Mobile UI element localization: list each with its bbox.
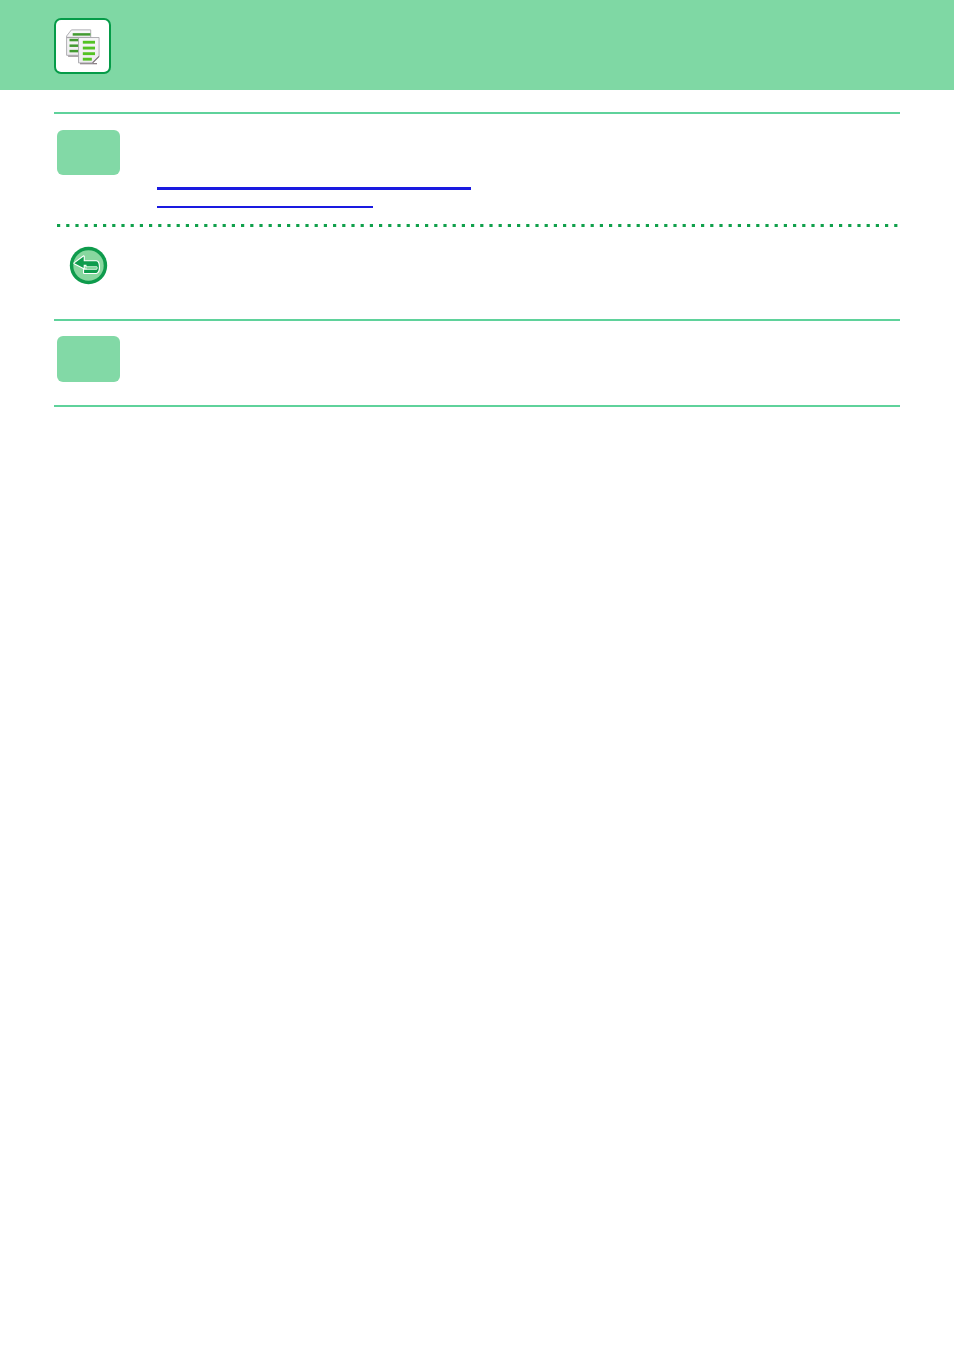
button[interactable] (57, 336, 120, 382)
button[interactable]: Copy (56, 20, 109, 72)
button[interactable]: Cancel (69, 246, 108, 285)
button[interactable] (57, 130, 120, 175)
